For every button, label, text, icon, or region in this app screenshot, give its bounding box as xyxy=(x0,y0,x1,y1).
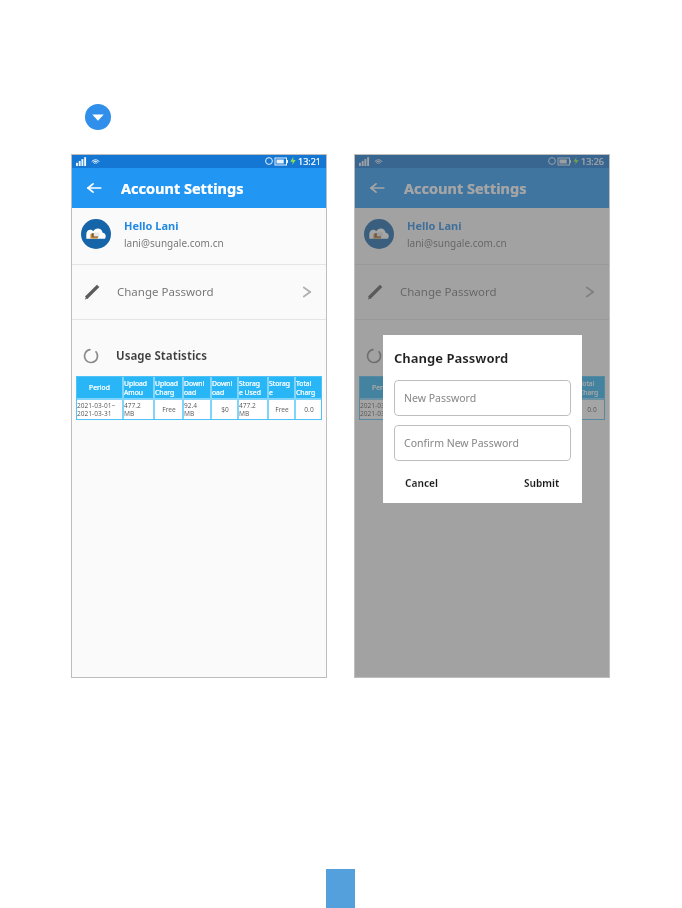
staticText: 477.2 MB xyxy=(124,401,141,418)
staticText: 92.4 MB xyxy=(184,401,198,418)
button[interactable]: Submit xyxy=(520,472,564,494)
staticText: 13:26 xyxy=(581,155,605,167)
staticText: Account Settings xyxy=(404,178,527,198)
staticText: Total Charg xyxy=(579,379,599,397)
staticText: 2021-03-01~ 2021-03-31 xyxy=(360,401,399,418)
staticText: Downl oad xyxy=(467,379,488,397)
staticText: Free xyxy=(162,405,176,414)
staticText: Free xyxy=(558,405,572,414)
staticText: 0.0 xyxy=(304,405,314,414)
staticText: Confirm New Password xyxy=(404,436,519,450)
staticText: 477.2 MB xyxy=(407,401,424,418)
staticText: Storag e Used xyxy=(522,379,544,397)
staticText: Total Charg xyxy=(296,379,316,397)
staticText: Usage Statistics xyxy=(116,348,208,364)
button[interactable]: New Password xyxy=(394,380,571,416)
staticText: $0 xyxy=(221,405,229,414)
staticText: 477.2 MB xyxy=(239,401,256,418)
staticText: Free xyxy=(275,405,289,414)
button[interactable]: Change Password xyxy=(354,265,610,319)
staticText: Storag e xyxy=(552,379,573,397)
button[interactable]: Back xyxy=(364,175,390,201)
button[interactable]: Cancel xyxy=(401,472,443,494)
staticText: lani@sungale.com.cn xyxy=(124,236,224,250)
staticText: Downl oad xyxy=(212,379,233,397)
staticText: Downl oad xyxy=(184,379,205,397)
button[interactable]: Change Password xyxy=(71,265,327,319)
button[interactable]: Confirm New Password xyxy=(394,425,571,461)
button[interactable]: Hello Lani xyxy=(71,210,327,258)
staticText: 2021-03-01~ 2021-03-31 xyxy=(77,401,116,418)
staticText: Change Password xyxy=(400,284,497,300)
staticText: 92.4 MB xyxy=(467,401,481,418)
staticText: Cancel xyxy=(405,476,439,490)
staticText: Upload Charg xyxy=(155,379,179,397)
staticText: Storag e xyxy=(269,379,290,397)
button[interactable]: Back xyxy=(81,175,107,201)
staticText: lani@sungale.com.cn xyxy=(407,236,507,250)
button[interactable]: Expand xyxy=(85,104,111,130)
staticText: New Password xyxy=(404,391,477,405)
staticText: Upload Amou xyxy=(407,379,431,397)
staticText: Upload Amou xyxy=(124,379,148,397)
button[interactable]: Hello Lani xyxy=(354,210,610,258)
staticText: Submit xyxy=(524,476,560,490)
staticText: Hello Lani xyxy=(124,218,179,233)
staticText: Hello Lani xyxy=(407,218,462,233)
staticText: Upload Charg xyxy=(438,379,462,397)
staticText: Period xyxy=(89,383,110,392)
staticText: Storag e Used xyxy=(239,379,261,397)
staticText: Change Password xyxy=(117,284,214,300)
staticText: 477.2 MB xyxy=(522,401,539,418)
staticText: 13:21 xyxy=(298,155,322,167)
staticText: Change Password xyxy=(394,349,509,367)
staticText: Account Settings xyxy=(121,178,244,198)
staticText: Downl oad xyxy=(495,379,516,397)
staticText: 0.0 xyxy=(587,405,597,414)
staticText: Usage Statistics xyxy=(399,348,491,364)
staticText: Period xyxy=(372,383,393,392)
